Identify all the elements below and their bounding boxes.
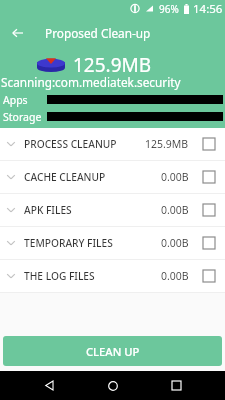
staticText: 125.9MB — [145, 137, 189, 151]
button[interactable]: TEMPORARY FILES — [0, 227, 225, 260]
button[interactable]: CLEAN UP — [3, 336, 222, 366]
staticText: 0.00B — [161, 170, 189, 184]
staticText: 0.00B — [161, 203, 189, 217]
staticText: APK FILES — [24, 203, 72, 217]
button[interactable]: THE LOG FILES — [0, 260, 225, 293]
button[interactable]: CACHE CLEANUP — [0, 161, 225, 194]
staticText: THE LOG FILES — [24, 269, 95, 283]
staticText: 0.00B — [161, 269, 189, 283]
button[interactable]: PROCESS CLEANUP — [0, 128, 225, 161]
button[interactable]: Home — [98, 371, 128, 400]
button[interactable]: Back — [0, 20, 35, 46]
staticText: CACHE CLEANUP — [24, 170, 106, 184]
staticText: 14:56 — [193, 1, 223, 17]
button[interactable]: APK FILES — [0, 194, 225, 227]
staticText: Storage — [3, 110, 42, 124]
staticText: 0.00B — [161, 236, 189, 250]
button[interactable]: Back — [34, 371, 64, 400]
staticText: Proposed Clean-up — [45, 25, 151, 41]
staticText: Apps — [3, 93, 28, 107]
staticText: 96% — [159, 2, 179, 16]
staticText: CLEAN UP — [86, 344, 140, 359]
staticText: TEMPORARY FILES — [24, 236, 113, 250]
staticText: 125.9MB — [73, 52, 152, 78]
staticText: PROCESS CLEANUP — [24, 137, 117, 151]
staticText: Scanning:com.mediatek.security — [1, 74, 181, 90]
button[interactable]: Recents — [161, 371, 191, 400]
